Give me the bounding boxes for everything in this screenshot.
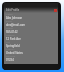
staticText: 12 Park Ave <box>6 37 21 41</box>
button[interactable]: Email <box>4 20 58 27</box>
staticText: alex@mail.com <box>6 23 26 27</box>
staticText: Edit Profile <box>6 8 20 12</box>
button[interactable]: City <box>4 41 58 48</box>
staticText: Zip code <box>6 55 16 58</box>
staticText: Phone <box>6 27 13 30</box>
button[interactable]: Name <box>4 13 58 20</box>
button[interactable]: Address <box>4 34 58 41</box>
staticText: Country <box>6 48 15 51</box>
staticText: United States <box>6 51 23 55</box>
staticText: City <box>6 41 11 44</box>
button[interactable]: Phone <box>4 27 58 34</box>
staticText: Springfield <box>6 44 20 48</box>
staticText: 01234 <box>6 58 14 62</box>
button[interactable]: Zip code <box>4 55 58 62</box>
staticText: Alex Johnson <box>6 16 23 20</box>
staticText: Address <box>6 34 15 37</box>
button[interactable]: Country <box>4 48 58 55</box>
staticText: Name <box>6 13 13 16</box>
staticText: 555-0142 <box>6 30 18 34</box>
staticText: Email <box>6 20 12 23</box>
